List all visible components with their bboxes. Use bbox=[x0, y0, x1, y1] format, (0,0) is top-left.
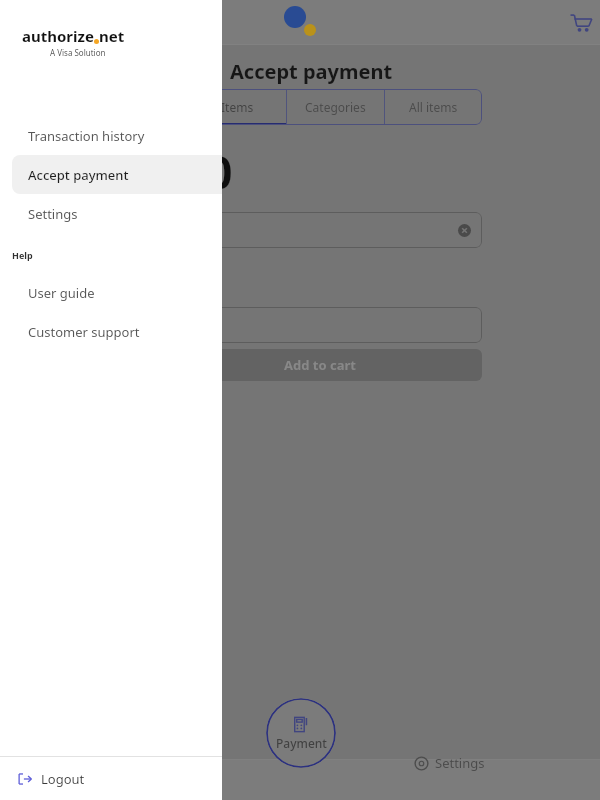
button[interactable]: Accept payment bbox=[12, 155, 222, 194]
button[interactable]: All items bbox=[385, 89, 482, 125]
staticText: Categories bbox=[305, 99, 366, 115]
button[interactable]: Add to cart bbox=[158, 349, 482, 381]
button[interactable]: Clear amount bbox=[158, 212, 482, 248]
staticText: authorize bbox=[22, 26, 94, 46]
staticText: Logout bbox=[41, 770, 85, 788]
staticText: Items bbox=[221, 99, 254, 115]
staticText: Settings bbox=[435, 754, 485, 772]
staticText: A Visa Solution bbox=[50, 47, 106, 58]
staticText: Transaction history bbox=[28, 127, 145, 145]
staticText: $0 bbox=[182, 142, 233, 202]
button[interactable] bbox=[158, 307, 482, 343]
button[interactable]: Clear amount bbox=[458, 224, 471, 237]
staticText: Customer support bbox=[28, 323, 140, 341]
button[interactable]: Items bbox=[188, 89, 286, 125]
button[interactable]: Cart bbox=[566, 7, 596, 37]
staticText: Accept payment bbox=[230, 58, 393, 85]
button[interactable]: User guide bbox=[12, 273, 222, 312]
staticText: Accept payment bbox=[28, 166, 129, 184]
button[interactable]: Settings bbox=[12, 194, 222, 233]
staticText: Payment bbox=[276, 735, 327, 751]
staticText: Help bbox=[12, 249, 33, 261]
staticText: Settings bbox=[28, 205, 78, 223]
button[interactable]: Logout bbox=[0, 757, 222, 800]
staticText: User guide bbox=[28, 284, 95, 302]
staticText: Add to cart bbox=[284, 356, 356, 374]
button[interactable]: Payment bbox=[266, 698, 336, 768]
staticText: All items bbox=[409, 99, 458, 115]
staticText: net bbox=[99, 26, 125, 46]
button[interactable]: Categories bbox=[287, 89, 384, 125]
button[interactable]: Customer support bbox=[12, 312, 222, 351]
button[interactable]: Transaction history bbox=[12, 116, 222, 155]
button[interactable]: Settings bbox=[414, 752, 485, 774]
